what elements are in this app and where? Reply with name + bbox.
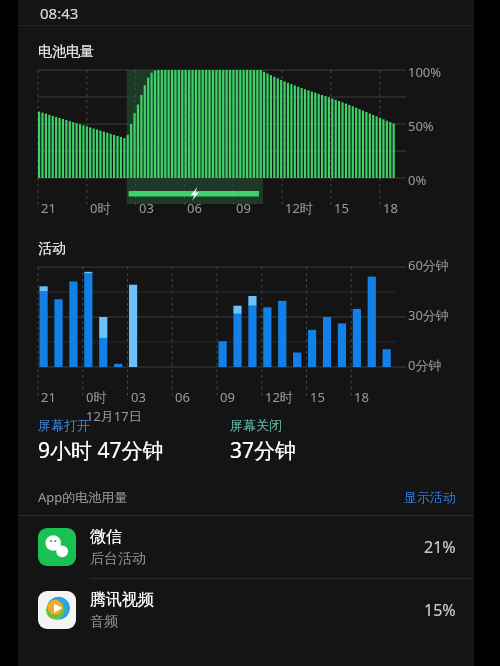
staticText: 12月17日 <box>86 407 142 425</box>
staticText: App的电池用量 <box>38 488 128 506</box>
staticText: 0时 <box>90 199 111 217</box>
staticText: 50% <box>408 117 434 135</box>
staticText: 12时 <box>285 199 313 217</box>
staticText: 09 <box>220 388 235 406</box>
staticText: 21% <box>424 536 456 558</box>
staticText: 15% <box>424 599 456 621</box>
staticText: 0分钟 <box>408 356 442 374</box>
staticText: 100% <box>408 63 442 81</box>
other: 腾讯视频 图标 <box>38 591 76 629</box>
staticText: 腾讯视频 <box>90 590 154 610</box>
staticText: 屏幕打开 <box>38 417 90 433</box>
staticText: 03 <box>139 199 154 217</box>
staticText: 08:43 <box>40 3 79 23</box>
staticText: 微信 <box>90 527 122 547</box>
staticText: 15 <box>334 199 349 217</box>
staticText: 电池电量 <box>38 43 94 61</box>
button[interactable]: 微信 图标 <box>18 516 474 578</box>
staticText: 活动 <box>38 240 66 258</box>
staticText: 15 <box>310 388 325 406</box>
staticText: 21 <box>41 199 56 217</box>
staticText: 12时 <box>265 388 293 406</box>
staticText: 03 <box>131 388 146 406</box>
staticText: 60分钟 <box>408 256 449 274</box>
staticText: 09 <box>236 199 251 217</box>
staticText: 21 <box>41 388 56 406</box>
other: 微信 图标 <box>38 528 76 566</box>
staticText: 屏幕关闭 <box>230 417 282 433</box>
staticText: 30分钟 <box>408 306 449 324</box>
staticText: 06 <box>175 388 190 406</box>
staticText: 37分钟 <box>230 436 297 465</box>
staticText: 0时 <box>86 388 107 406</box>
staticText: 9小时 47分钟 <box>38 436 164 465</box>
staticText: 0% <box>408 171 427 189</box>
button[interactable]: 腾讯视频 图标 <box>18 579 474 641</box>
staticText: 18 <box>354 388 369 406</box>
staticText: 18 <box>383 199 398 217</box>
staticText: 音频 <box>90 613 118 631</box>
button[interactable]: 显示活动 <box>400 485 460 509</box>
staticText: 显示活动 <box>404 489 456 505</box>
staticText: 06 <box>187 199 202 217</box>
staticText: 后台活动 <box>90 550 146 568</box>
